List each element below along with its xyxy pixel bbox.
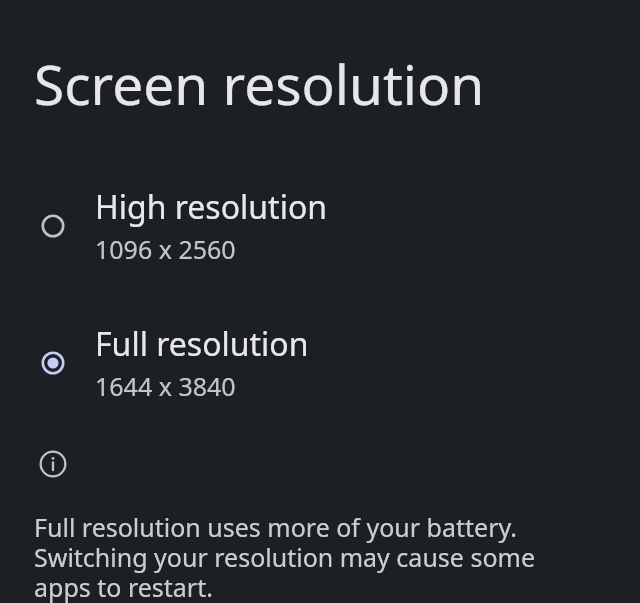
staticText: Full resolution uses more of your batter… xyxy=(34,510,594,603)
button[interactable]: More information xyxy=(36,447,70,481)
staticText: 1096 x 2560 xyxy=(95,232,236,266)
button[interactable]: Full resolution xyxy=(0,312,640,413)
staticText: 1644 x 3840 xyxy=(95,369,236,403)
staticText: Screen resolution xyxy=(34,46,485,121)
button[interactable]: High resolution xyxy=(0,175,640,276)
staticText: Full resolution xyxy=(95,322,309,366)
staticText: High resolution xyxy=(95,185,328,229)
